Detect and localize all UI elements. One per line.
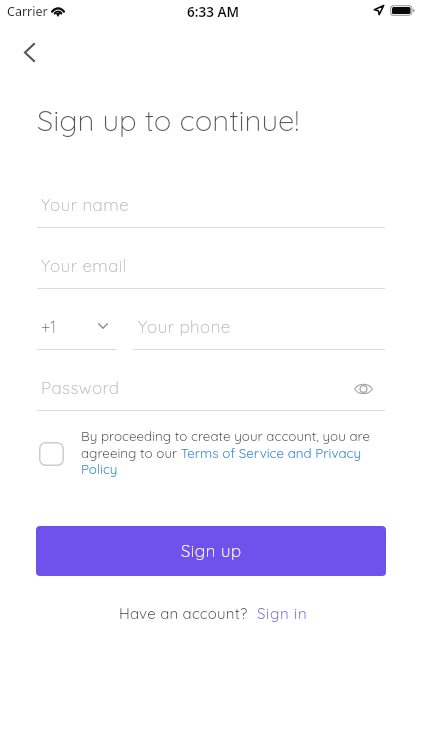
- staticText: Sign up: [181, 540, 242, 561]
- staticText: Sign in: [257, 604, 308, 623]
- staticText: Your phone: [138, 316, 231, 337]
- button[interactable]: Sign up: [36, 526, 386, 576]
- button[interactable]: Accept terms and conditions: [39, 442, 64, 466]
- staticText: By proceeding to create your account, yo…: [81, 428, 371, 477]
- staticText: Carrier: [7, 3, 48, 20]
- staticText: Have an account?: [119, 604, 248, 623]
- button[interactable]: Select country code: [91, 314, 115, 338]
- staticText: 6:33 AM: [187, 3, 240, 21]
- staticText: Your name: [41, 194, 130, 215]
- staticText: +1: [41, 316, 57, 337]
- staticText: Sign up to continue!: [37, 101, 300, 138]
- button[interactable]: Sign in: [257, 604, 308, 623]
- staticText: Your email: [41, 255, 127, 276]
- button[interactable]: Back: [9, 32, 49, 72]
- button[interactable]: Show password: [349, 374, 378, 404]
- staticText: Password: [41, 377, 120, 398]
